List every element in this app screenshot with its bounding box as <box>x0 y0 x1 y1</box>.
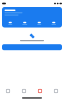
button[interactable]: Tab 3 <box>32 86 48 96</box>
button[interactable]: Tab 1 <box>0 86 16 96</box>
button[interactable]: Continue <box>2 44 62 50</box>
button[interactable]: Tab 4 <box>48 86 64 96</box>
button[interactable]: Tab 2 <box>16 86 32 96</box>
